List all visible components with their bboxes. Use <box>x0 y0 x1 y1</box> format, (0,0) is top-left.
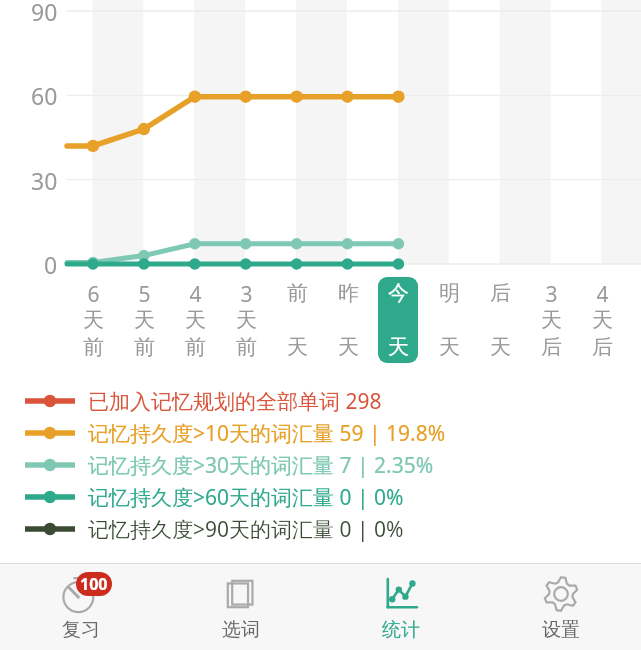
staticText: 记忆持久度>10天的词汇量 59 | 19.8% <box>88 419 446 448</box>
staticText: 天 <box>439 334 460 360</box>
staticText: 统计 <box>382 618 420 642</box>
staticText: 天 <box>592 307 613 333</box>
staticText: 30 <box>31 165 58 196</box>
staticText: 天 <box>287 334 308 360</box>
button[interactable]: 记忆持久度>30天的词汇量 7 | 2.35% <box>0 449 641 481</box>
staticText: 天 <box>388 334 409 360</box>
button[interactable] <box>378 277 418 363</box>
staticText: 3 <box>240 280 253 309</box>
staticText: 设置 <box>542 618 580 642</box>
button[interactable]: 统计 <box>321 564 481 642</box>
staticText: 90 <box>31 0 58 27</box>
button[interactable]: 记忆持久度>60天的词汇量 0 | 0% <box>0 481 641 513</box>
staticText: 5 <box>138 280 151 309</box>
staticText: 0 <box>44 249 58 280</box>
staticText: 已加入记忆规划的全部单词 298 <box>88 387 382 416</box>
staticText: 记忆持久度>90天的词汇量 0 | 0% <box>88 515 404 544</box>
staticText: 前 <box>185 334 206 360</box>
staticText: 记忆持久度>60天的词汇量 0 | 0% <box>88 483 404 512</box>
staticText: 天 <box>83 307 104 333</box>
staticText: 后 <box>490 280 511 306</box>
staticText: 100 <box>80 573 108 595</box>
staticText: 今 <box>388 280 409 306</box>
button[interactable]: 设置 <box>481 564 641 642</box>
staticText: 4 <box>596 280 609 309</box>
staticText: 天 <box>236 307 257 333</box>
staticText: 明 <box>439 280 460 306</box>
button[interactable]: 记忆持久度>90天的词汇量 0 | 0% <box>0 513 641 545</box>
staticText: 后 <box>592 334 613 360</box>
staticText: 天 <box>338 334 359 360</box>
staticText: 选词 <box>222 618 260 642</box>
button[interactable]: 记忆持久度>10天的词汇量 59 | 19.8% <box>0 417 641 449</box>
staticText: 3 <box>545 280 558 309</box>
button[interactable]: 已加入记忆规划的全部单词 298 <box>0 385 641 417</box>
staticText: 前 <box>287 280 308 306</box>
staticText: 昨 <box>338 280 359 306</box>
staticText: 记忆持久度>30天的词汇量 7 | 2.35% <box>88 451 434 480</box>
staticText: 前 <box>236 334 257 360</box>
staticText: 复习 <box>62 618 100 642</box>
staticText: 天 <box>490 334 511 360</box>
staticText: 60 <box>31 80 58 111</box>
staticText: 前 <box>83 334 104 360</box>
staticText: 天 <box>541 307 562 333</box>
staticText: 天 <box>185 307 206 333</box>
button[interactable]: 选词 <box>161 564 321 642</box>
button[interactable]: 复习 <box>0 564 161 642</box>
staticText: 前 <box>134 334 155 360</box>
staticText: 6 <box>87 280 100 309</box>
staticText: 天 <box>134 307 155 333</box>
staticText: 后 <box>541 334 562 360</box>
staticText: 4 <box>189 280 202 309</box>
